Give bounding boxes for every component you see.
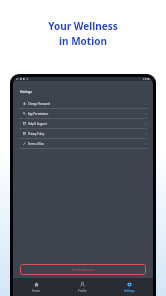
button[interactable]: Help & Support xyxy=(13,119,153,129)
button[interactable]: Settings xyxy=(106,278,153,293)
button[interactable]: Profile xyxy=(59,278,106,293)
button[interactable]: Change Password xyxy=(13,99,153,109)
staticText: Profile xyxy=(78,289,87,293)
staticText: Privacy Policy xyxy=(28,132,45,136)
staticText: App Permissions xyxy=(28,112,49,116)
staticText: Help & Support xyxy=(28,122,47,126)
staticText: Your Wellness xyxy=(48,19,118,33)
staticText: Terms of Use xyxy=(28,142,44,146)
staticText: Delete Account xyxy=(72,268,95,272)
button[interactable]: App Permissions xyxy=(13,109,153,119)
staticText: Settings xyxy=(20,90,32,94)
button[interactable]: Terms of Use xyxy=(13,139,153,149)
button[interactable]: Delete Account xyxy=(20,264,146,275)
button[interactable]: Privacy Policy xyxy=(13,129,153,139)
staticText: Change Password xyxy=(28,102,50,106)
staticText: in Motion xyxy=(59,34,107,48)
staticText: Home xyxy=(32,289,40,293)
staticText: Settings xyxy=(124,289,135,293)
button[interactable]: Home xyxy=(13,278,59,293)
